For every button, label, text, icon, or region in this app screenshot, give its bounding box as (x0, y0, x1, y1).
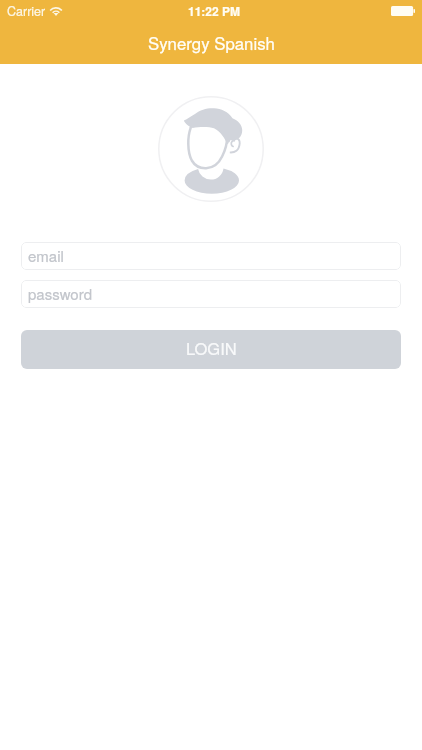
staticText: Carrier (7, 2, 46, 20)
button[interactable]: password (21, 280, 401, 308)
button[interactable]: email (21, 242, 401, 270)
staticText: Synergy Spanish (148, 31, 275, 55)
staticText: email (28, 245, 64, 266)
staticText: LOGIN (186, 336, 237, 360)
other: Battery full (391, 6, 415, 16)
staticText: 11:22 PM (188, 2, 241, 19)
staticText: password (28, 283, 93, 304)
other: Wi-Fi signal (50, 6, 62, 16)
button[interactable]: LOGIN (21, 330, 401, 369)
